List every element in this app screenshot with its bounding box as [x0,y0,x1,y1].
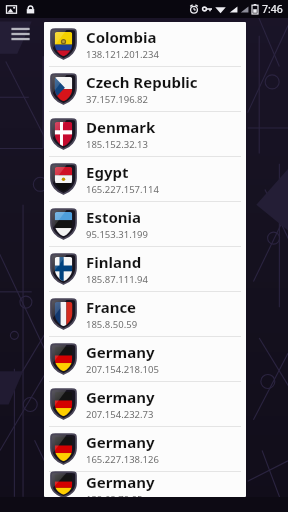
button[interactable]: Open navigation menu [9,25,33,43]
staticText: Colombia [86,27,157,47]
button[interactable]: Czech Republic [44,67,246,112]
staticText: Finland [86,252,142,272]
button[interactable]: Colombia [44,22,246,67]
button[interactable]: Denmark [44,112,246,157]
staticText: 185.8.50.59 [86,318,138,331]
staticText: 95.153.31.199 [86,228,148,241]
staticText: Germany [86,387,155,407]
button[interactable]: Germany [44,382,246,427]
button[interactable]: Germany [44,427,246,472]
staticText: Denmark [86,117,156,137]
staticText: 207.154.218.105 [86,363,159,376]
staticText: 207.154.232.73 [86,408,154,421]
staticText: Estonia [86,207,142,227]
staticText: 138.121.201.234 [86,48,159,61]
staticText: 37.157.196.82 [86,93,148,106]
staticText: 138.68.79.95 [86,493,143,497]
staticText: Germany [86,432,155,452]
button[interactable]: Germany [44,472,246,497]
button[interactable]: Egypt [44,157,246,202]
staticText: Germany [86,472,155,492]
staticText: France [86,297,137,317]
staticText: Egypt [86,162,129,182]
button[interactable]: Finland [44,247,246,292]
button[interactable]: Estonia [44,202,246,247]
staticText: Czech Republic [86,72,198,92]
staticText: 185.87.111.94 [86,273,148,286]
staticText: 7:46 [262,2,283,16]
staticText: 165.227.157.114 [86,183,159,196]
staticText: 185.152.32.13 [86,138,148,151]
button[interactable]: France [44,292,246,337]
staticText: 165.227.138.126 [86,453,159,466]
staticText: Germany [86,342,155,362]
button[interactable]: Germany [44,337,246,382]
